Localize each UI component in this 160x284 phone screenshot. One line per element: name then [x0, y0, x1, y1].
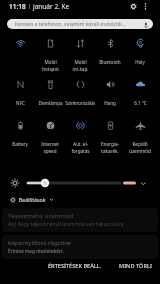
button[interactable] — [5, 36, 35, 77]
button[interactable]: Szinkronizálás — [65, 77, 95, 118]
button[interactable]: ÉRTESÍTÉSEK BEÁLL. — [45, 259, 105, 273]
staticText: MIND TÖRLI — [119, 262, 152, 270]
button[interactable]: Aut. el- forgatás — [65, 118, 95, 159]
button[interactable]: Expand — [137, 177, 149, 189]
staticText: NFC — [16, 100, 25, 106]
staticText: Hang — [104, 100, 116, 106]
staticText: Teljesítmény üzemmód — [8, 212, 74, 220]
staticText: Aut. el- forgatás — [71, 141, 90, 154]
staticText: Elemlámpa — [38, 100, 63, 106]
staticText: 11:18 — [9, 2, 26, 11]
button[interactable]: Beállítások — [10, 196, 54, 203]
staticText: Mobil int.kap. — [72, 59, 89, 72]
staticText: Bluetooth — [99, 59, 121, 65]
button[interactable]: Settings — [128, 1, 139, 12]
button[interactable]: Repülő üzemmód — [125, 118, 155, 159]
staticText: A(z) Nagy teljesítményű üzemmód van beka… — [8, 221, 124, 228]
staticText: Battery — [12, 141, 28, 147]
button[interactable]: Bluetooth — [95, 36, 125, 77]
button[interactable]: Brightness — [0, 177, 160, 189]
staticText: Hely — [135, 59, 145, 65]
staticText: ÉRTESÍTÉSEK BEÁLL. — [48, 262, 102, 270]
button[interactable]: Mobil int.kap. — [65, 36, 95, 77]
button[interactable]: More options — [140, 1, 151, 12]
staticText: Internet speed — [41, 141, 59, 154]
staticText: január 2. Ke — [33, 2, 70, 11]
staticText: Beállítások — [19, 196, 46, 203]
staticText: Érintse meg részletekért. — [8, 248, 65, 255]
button[interactable]: Internet speed — [35, 118, 65, 159]
button[interactable]: NFC — [5, 77, 35, 118]
staticText: Keresés a telefonon, valamint közeli esz… — [15, 21, 126, 28]
staticText: Energia- takarék. — [101, 141, 119, 154]
button[interactable]: Energia- takarék. — [95, 118, 125, 159]
staticText: Repülő üzemmód — [129, 141, 151, 154]
staticText: Szinkronizálás — [65, 100, 95, 106]
button[interactable]: Hely — [125, 36, 155, 77]
button[interactable]: 6.1 °C — [125, 77, 155, 118]
button[interactable]: Battery — [5, 118, 35, 159]
button[interactable]: Mobil hotspot — [35, 36, 65, 77]
button[interactable]: MIND TÖRLI — [116, 259, 155, 273]
button[interactable]: Teljesítmény üzemmód — [2, 208, 158, 232]
staticText: Mobil hotspot — [42, 59, 59, 72]
staticText: Képernyőfotó rögzítve — [8, 239, 71, 247]
button[interactable]: Képernyőfotó rögzítve — [2, 235, 158, 259]
staticText: 6.1 °C — [134, 100, 147, 106]
button[interactable]: Elemlámpa — [35, 77, 65, 118]
button[interactable]: Keresés a telefonon, valamint közeli esz… — [7, 19, 153, 29]
button[interactable]: Hang — [95, 77, 125, 118]
